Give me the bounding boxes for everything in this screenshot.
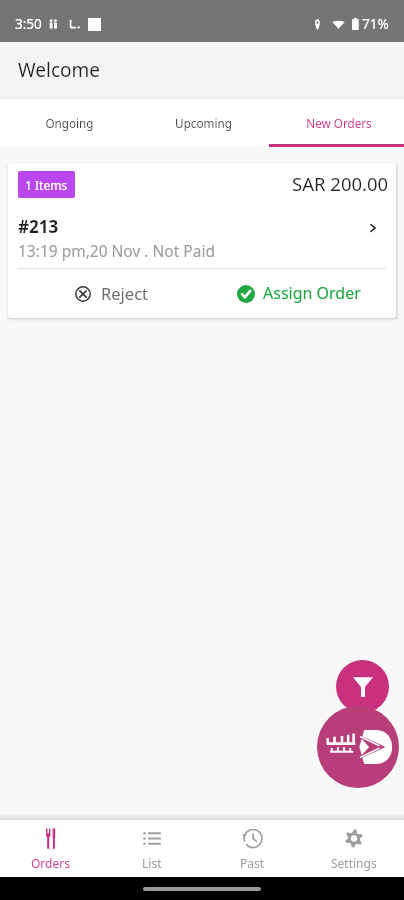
button[interactable]: Create order [317,706,399,788]
button[interactable]: Ongoing [0,97,134,147]
staticText: List [142,855,162,871]
button[interactable]: Assign Order [202,269,396,318]
staticText: Past [240,855,265,871]
staticText: Ongoing [45,115,94,131]
button[interactable]: List [101,820,202,877]
button[interactable]: 1 Items [8,163,396,318]
staticText: SAR 200.00 [292,171,389,196]
button[interactable]: Past [202,820,303,877]
button[interactable]: Settings [303,820,404,877]
staticText: #213 [18,215,59,238]
staticText: Orders [31,855,70,871]
staticText: Assign Order [263,282,361,304]
button[interactable]: Upcoming [134,97,269,147]
staticText: New Orders [306,115,372,131]
button[interactable]: Reject [8,269,202,318]
staticText: 1 Items [25,177,68,193]
staticText: Welcome [18,57,101,83]
staticText: 3:50 [15,15,42,33]
staticText: Upcoming [175,115,232,131]
button[interactable]: New Orders [269,97,404,147]
staticText: 13:19 pm,20 Nov . Not Paid [18,240,215,261]
button[interactable]: Orders [0,820,101,877]
button[interactable]: Filter [336,660,389,713]
staticText: 71% [362,15,389,33]
staticText: Reject [101,282,149,304]
staticText: Settings [331,855,377,871]
